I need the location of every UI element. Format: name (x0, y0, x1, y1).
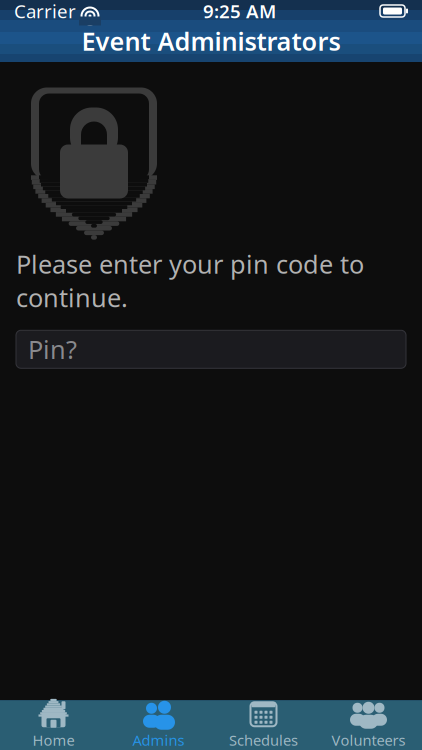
button[interactable]: Volunteers (316, 700, 421, 750)
staticText: Admins (132, 730, 184, 750)
staticText: Please enter your pin code to continue. (16, 247, 364, 314)
staticText: Volunteers (331, 730, 405, 750)
staticText: 9:25 AM (203, 0, 276, 23)
button[interactable]: Pin code field (16, 330, 406, 368)
staticText: Schedules (229, 730, 298, 750)
button[interactable]: Admins (106, 700, 211, 750)
button[interactable]: Home (1, 700, 106, 750)
staticText: Event Administrators (81, 24, 340, 58)
staticText: Carrier (14, 0, 76, 23)
staticText: Home (32, 730, 74, 750)
staticText: Pin? (28, 332, 77, 366)
button[interactable]: Schedules (211, 700, 316, 750)
